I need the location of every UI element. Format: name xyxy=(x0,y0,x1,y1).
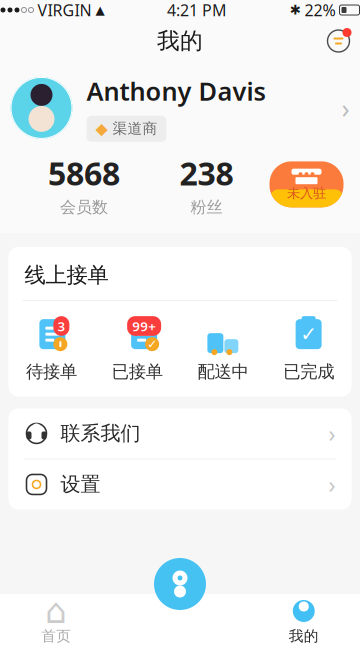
staticText: 3 xyxy=(57,317,65,335)
staticText: ◆ xyxy=(95,120,107,138)
button[interactable]: 3 xyxy=(8,315,94,382)
staticText: 已完成 xyxy=(283,361,334,382)
staticText: 已接单 xyxy=(112,361,163,382)
button[interactable]: 配送中 xyxy=(180,315,266,382)
staticText: 5868 xyxy=(48,152,120,194)
staticText: ✱ xyxy=(289,2,300,17)
staticText: 粉丝 xyxy=(190,197,222,217)
staticText: › xyxy=(341,90,349,126)
staticText: 待接单 xyxy=(26,361,77,382)
staticText: 联系我们 xyxy=(60,421,140,446)
button[interactable]: 未入驻 xyxy=(269,161,343,207)
staticText: 我的 xyxy=(289,627,319,645)
staticText: Anthony Davis xyxy=(86,74,265,108)
staticText: 我的 xyxy=(157,27,203,55)
button[interactable]: 消息 xyxy=(323,26,353,56)
staticText: ⌂ xyxy=(45,591,67,631)
staticText: 99+ xyxy=(132,317,156,335)
staticText: 配送中 xyxy=(197,361,248,382)
staticText: › xyxy=(328,418,335,448)
staticText: 22% xyxy=(304,0,335,21)
staticText: VIRGIN xyxy=(37,0,91,21)
button[interactable]: ⌂ xyxy=(0,594,120,650)
button[interactable]: 地图 xyxy=(154,558,206,610)
staticText: 线上接单 xyxy=(24,262,108,288)
staticText: 设置 xyxy=(60,472,100,497)
button[interactable]: 设置 xyxy=(8,459,351,509)
staticText: 未入驻 xyxy=(287,185,326,202)
button[interactable]: ✓ xyxy=(266,315,352,382)
button[interactable]: 我的 xyxy=(240,594,360,650)
staticText: 首页 xyxy=(41,627,71,645)
button[interactable]: 联系我们 xyxy=(8,408,351,458)
staticText: ▲ xyxy=(95,3,104,17)
staticText: 会员数 xyxy=(60,197,108,217)
staticText: 238 xyxy=(179,152,233,194)
staticText: › xyxy=(328,469,335,499)
staticText: 渠道商 xyxy=(112,120,157,138)
button[interactable]: Anthony Davis xyxy=(0,62,360,152)
staticText: ✓ xyxy=(147,337,157,351)
button[interactable]: ✓ xyxy=(94,315,180,382)
staticText: ✓ xyxy=(300,323,317,345)
staticText: 4:21 PM xyxy=(167,0,227,21)
